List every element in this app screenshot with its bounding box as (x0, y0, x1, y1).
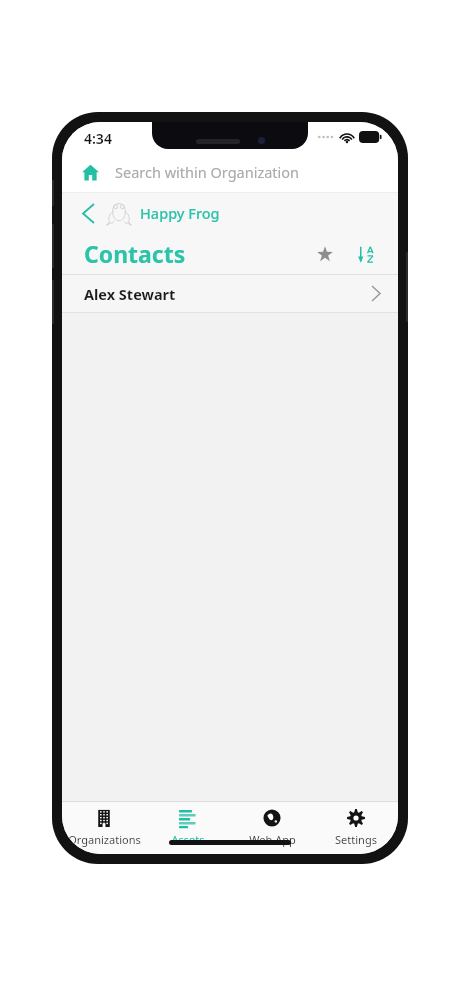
button[interactable]: Organizations (62, 802, 146, 854)
button[interactable]: Favorite (308, 237, 342, 271)
button[interactable]: Sort (348, 237, 382, 271)
staticText: Alex Stewart (84, 284, 176, 304)
button[interactable]: Home (62, 152, 398, 192)
button[interactable]: Settings (314, 802, 398, 854)
staticText: Web App (249, 832, 296, 847)
other: Home (79, 161, 101, 183)
staticText: 4:34 (84, 129, 112, 148)
staticText: Contacts (84, 238, 186, 269)
button[interactable]: Alex Stewart (62, 275, 398, 312)
button[interactable]: Assets (146, 802, 230, 854)
staticText: Search within Organization (115, 162, 300, 182)
button[interactable]: Happy Frog (140, 203, 220, 223)
button[interactable]: Web App (230, 802, 314, 854)
staticText: Organizations (68, 832, 141, 847)
staticText: Assets (171, 832, 205, 847)
staticText: Settings (335, 832, 377, 847)
button[interactable]: Back (74, 199, 102, 227)
